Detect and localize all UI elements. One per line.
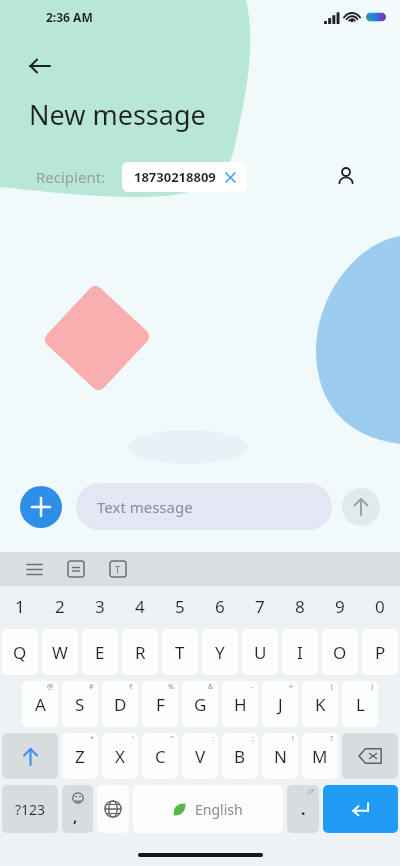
button[interactable]: G bbox=[182, 681, 218, 727]
button[interactable]: Choose contact bbox=[328, 159, 364, 195]
staticText: V bbox=[195, 745, 206, 768]
staticText: X bbox=[115, 745, 125, 768]
button[interactable]: O bbox=[322, 629, 358, 675]
staticText: 0 bbox=[375, 595, 385, 618]
button[interactable]: 18730218809 bbox=[122, 162, 247, 192]
staticText: . bbox=[301, 798, 306, 820]
button[interactable]: W bbox=[42, 629, 78, 675]
button[interactable]: Y bbox=[202, 629, 238, 675]
button[interactable]: Text formatting bbox=[104, 555, 132, 583]
staticText: 8 bbox=[295, 595, 305, 618]
button[interactable]: Add attachment bbox=[20, 486, 62, 528]
staticText: P bbox=[375, 641, 386, 664]
button[interactable]: Shift bbox=[2, 733, 58, 779]
staticText: - bbox=[251, 682, 254, 692]
button[interactable]: E bbox=[82, 629, 118, 675]
staticText: ( bbox=[331, 682, 334, 692]
staticText: N bbox=[274, 745, 287, 768]
staticText: ,!? bbox=[307, 787, 314, 797]
button[interactable]: C bbox=[142, 733, 178, 779]
button[interactable]: A bbox=[22, 681, 58, 727]
button[interactable]: Z bbox=[62, 733, 98, 779]
button[interactable]: Enter bbox=[323, 785, 398, 833]
staticText: 6 bbox=[215, 595, 225, 618]
button[interactable]: Clipboard bbox=[62, 555, 90, 583]
staticText: W bbox=[52, 641, 68, 664]
button[interactable]: Send bbox=[342, 488, 380, 526]
button[interactable]: I bbox=[282, 629, 318, 675]
staticText: % bbox=[168, 682, 174, 692]
staticText: ) bbox=[371, 682, 374, 692]
staticText: 3 bbox=[95, 595, 105, 618]
staticText: ; bbox=[252, 734, 254, 744]
button[interactable]: Text message bbox=[76, 483, 332, 530]
button[interactable]: ?123 bbox=[2, 785, 58, 833]
staticText: T bbox=[175, 641, 185, 664]
staticText: F bbox=[156, 693, 165, 716]
button[interactable]: Keyboard menu bbox=[20, 555, 48, 583]
button[interactable]: S bbox=[62, 681, 98, 727]
staticText: E bbox=[95, 641, 105, 664]
staticText: 18730218809 bbox=[134, 168, 216, 186]
button[interactable]: F bbox=[142, 681, 178, 727]
button[interactable]: Q bbox=[2, 629, 38, 675]
staticText: New message bbox=[29, 96, 206, 133]
button[interactable]: Change language bbox=[97, 785, 129, 833]
staticText: Recipient: bbox=[36, 167, 106, 187]
button[interactable]: 6 bbox=[200, 586, 240, 626]
staticText: O bbox=[333, 641, 347, 664]
button[interactable]: 5 bbox=[160, 586, 200, 626]
staticText: G bbox=[194, 693, 207, 716]
button[interactable]: Period bbox=[287, 785, 319, 833]
button[interactable]: D bbox=[102, 681, 138, 727]
button[interactable]: N bbox=[262, 733, 298, 779]
button[interactable]: Backspace bbox=[342, 733, 398, 779]
button[interactable]: English bbox=[133, 785, 283, 833]
button[interactable]: P bbox=[362, 629, 398, 675]
button[interactable]: 1 bbox=[0, 586, 40, 626]
button[interactable]: X bbox=[102, 733, 138, 779]
button[interactable]: 2 bbox=[40, 586, 80, 626]
staticText: Q bbox=[13, 641, 27, 664]
staticText: , bbox=[73, 806, 78, 826]
staticText: ?123 bbox=[15, 800, 46, 819]
button[interactable]: 8 bbox=[280, 586, 320, 626]
staticText: * bbox=[90, 734, 94, 744]
button[interactable]: J bbox=[262, 681, 298, 727]
button[interactable]: L bbox=[342, 681, 378, 727]
button[interactable]: V bbox=[182, 733, 218, 779]
button[interactable]: T bbox=[162, 629, 198, 675]
staticText: ' bbox=[132, 734, 134, 744]
button[interactable]: H bbox=[222, 681, 258, 727]
staticText: U bbox=[254, 641, 267, 664]
button[interactable]: 4 bbox=[120, 586, 160, 626]
staticText: T bbox=[115, 563, 121, 575]
staticText: + bbox=[289, 682, 294, 692]
button[interactable]: M bbox=[302, 733, 338, 779]
button[interactable]: Emoji bbox=[62, 785, 93, 833]
button[interactable]: B bbox=[222, 733, 258, 779]
button[interactable]: Back bbox=[20, 46, 60, 86]
button[interactable]: R bbox=[122, 629, 158, 675]
staticText: D bbox=[114, 693, 127, 716]
button[interactable]: 0 bbox=[360, 586, 400, 626]
staticText: & bbox=[208, 682, 214, 692]
staticText: 1 bbox=[15, 595, 25, 618]
staticText: " bbox=[171, 734, 174, 744]
button[interactable]: K bbox=[302, 681, 338, 727]
staticText: ! bbox=[292, 734, 294, 744]
staticText: L bbox=[356, 693, 365, 716]
staticText: 7 bbox=[255, 595, 265, 618]
staticText: Text message bbox=[97, 497, 193, 517]
staticText: M bbox=[312, 745, 328, 768]
button[interactable]: 7 bbox=[240, 586, 280, 626]
staticText: : bbox=[212, 734, 214, 744]
staticText: 9 bbox=[335, 595, 345, 618]
staticText: ? bbox=[330, 734, 334, 744]
staticText: 2:36 AM bbox=[46, 9, 93, 25]
button[interactable]: U bbox=[242, 629, 278, 675]
button[interactable]: 9 bbox=[320, 586, 360, 626]
staticText: 2 bbox=[55, 595, 65, 618]
button[interactable]: 3 bbox=[80, 586, 120, 626]
staticText: # bbox=[89, 682, 94, 692]
